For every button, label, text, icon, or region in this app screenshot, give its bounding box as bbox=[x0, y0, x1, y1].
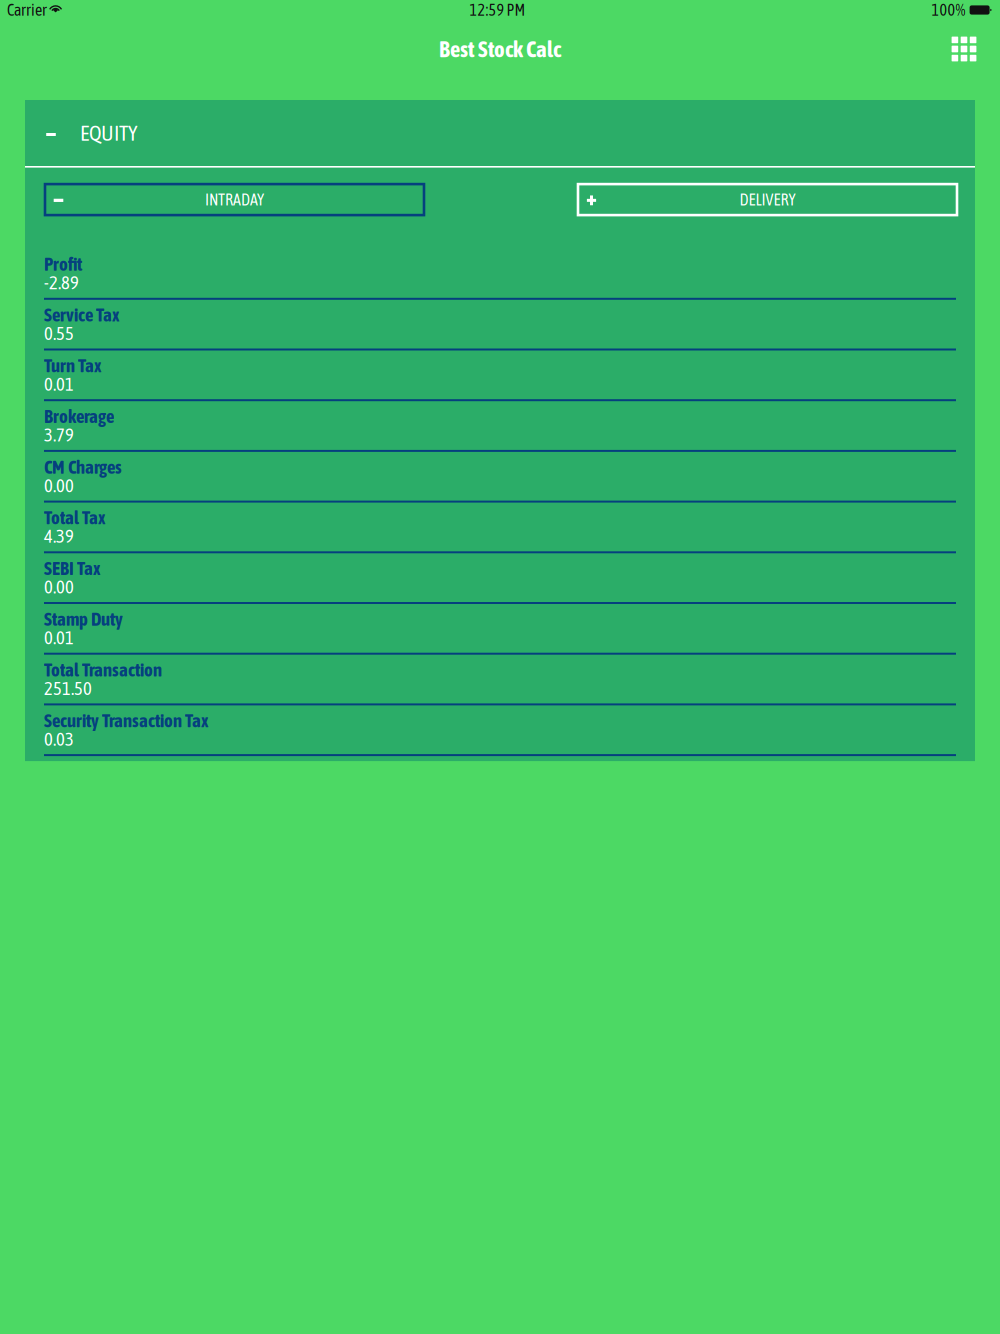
button[interactable]: INTRADAY bbox=[45, 184, 424, 215]
staticText: 251.50 bbox=[44, 677, 92, 699]
staticText: CM Charges bbox=[44, 456, 122, 478]
staticText: 0.00 bbox=[44, 576, 74, 597]
staticText: 0.00 bbox=[44, 475, 74, 496]
staticText: Profit bbox=[44, 253, 82, 275]
staticText: Best Stock Calc bbox=[439, 36, 561, 62]
staticText: EQUITY bbox=[80, 121, 137, 145]
staticText: 0.01 bbox=[44, 373, 74, 395]
staticText: Total Transaction bbox=[44, 659, 162, 680]
staticText: Carrier bbox=[7, 1, 47, 19]
staticText: Service Tax bbox=[44, 304, 120, 325]
button[interactable]: DELIVERY bbox=[578, 184, 957, 215]
staticText: Total Tax bbox=[44, 507, 106, 528]
staticText: 0.55 bbox=[44, 323, 74, 344]
staticText: 3.79 bbox=[44, 424, 74, 445]
staticText: 100% bbox=[932, 1, 966, 19]
staticText: 4.39 bbox=[44, 525, 74, 547]
staticText: Turn Tax bbox=[44, 355, 102, 376]
staticText: INTRADAY bbox=[205, 190, 264, 209]
staticText: 12:59 PM bbox=[469, 1, 525, 19]
staticText: 0.03 bbox=[44, 728, 74, 750]
staticText: Stamp Duty bbox=[44, 608, 123, 630]
button[interactable]: Apps bbox=[940, 29, 1000, 69]
staticText: SEBI Tax bbox=[44, 558, 101, 579]
staticText: Security Transaction Tax bbox=[44, 710, 209, 731]
staticText: Brokerage bbox=[44, 405, 114, 427]
staticText: DELIVERY bbox=[739, 190, 795, 209]
staticText: -2.89 bbox=[44, 272, 79, 293]
staticText: 0.01 bbox=[44, 627, 74, 648]
